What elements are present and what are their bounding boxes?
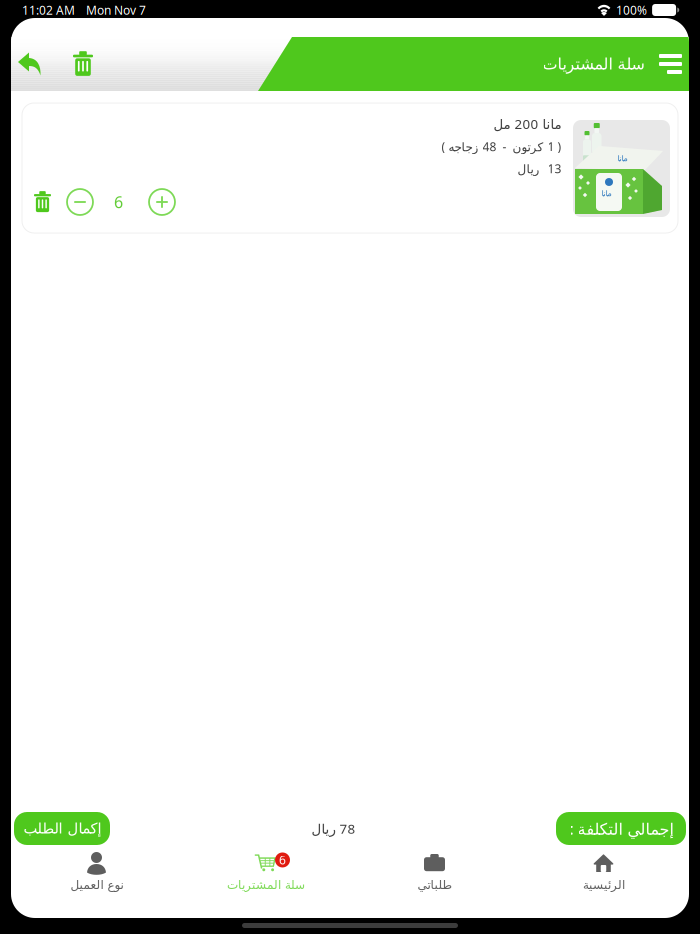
staticText: طلباتي: [417, 878, 452, 892]
button[interactable]: Menu: [659, 54, 682, 74]
staticText: 78 ريال: [311, 820, 355, 837]
staticText: إكمال الطلب: [23, 820, 101, 837]
button[interactable]: Increase quantity: [149, 189, 175, 215]
staticText: الرئيسية: [582, 878, 624, 892]
staticText: إجمالي التكلفة :: [569, 818, 673, 839]
button[interactable]: سلة المشتريات: [181, 852, 350, 896]
staticText: مانا 200 مل: [493, 115, 561, 133]
button[interactable]: Remove item: [34, 191, 51, 213]
staticText: سلة المشتريات: [542, 55, 644, 73]
staticText: مانا: [617, 154, 627, 163]
button[interactable]: Back: [18, 52, 41, 75]
staticText: Mon Nov 7: [86, 2, 146, 18]
staticText: سلة المشتريات: [226, 878, 304, 892]
button[interactable]: نوع العميل: [12, 852, 181, 896]
staticText: 11:02 AM: [22, 2, 75, 18]
staticText: 100%: [616, 2, 647, 18]
staticText: ( 1 كرتون - 48 زجاجه ): [441, 139, 561, 155]
button[interactable]: Decrease quantity: [67, 189, 93, 215]
button[interactable]: Delete all: [73, 51, 93, 76]
button[interactable]: إجمالي التكلفة :: [556, 812, 686, 845]
button[interactable]: إكمال الطلب: [14, 812, 110, 845]
staticText: 6: [114, 191, 123, 213]
button[interactable]: الرئيسية: [519, 852, 688, 896]
staticText: مانا: [601, 189, 611, 198]
button[interactable]: طلباتي: [350, 852, 519, 896]
staticText: 6: [279, 852, 286, 868]
staticText: نوع العميل: [70, 878, 123, 892]
staticText: 13 ريال: [517, 161, 561, 176]
